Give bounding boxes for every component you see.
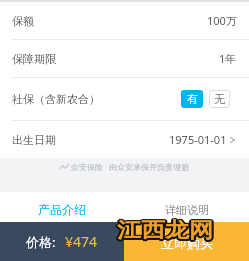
- staticText: 江西龙网: [116, 218, 212, 243]
- staticText: 100万: [207, 13, 237, 28]
- staticText: 详细说明: [165, 203, 209, 217]
- staticText: 江西龙网: [119, 218, 215, 244]
- staticText: 江西龙网: [117, 216, 213, 242]
- staticText: 1年: [219, 51, 237, 66]
- staticText: 江西龙网: [116, 216, 212, 242]
- staticText: 江西龙网: [118, 218, 214, 244]
- staticText: 社保（含新农合）: [12, 92, 100, 106]
- staticText: 江西龙网: [115, 218, 211, 243]
- staticText: 江西龙网: [118, 217, 214, 242]
- staticText: 江西龙网: [115, 217, 211, 242]
- button[interactable]: 无: [209, 90, 230, 108]
- staticText: 江西龙网: [119, 218, 215, 243]
- staticText: 江西龙网: [115, 218, 211, 244]
- staticText: 保障期限: [12, 52, 56, 66]
- button[interactable]: 有: [181, 90, 203, 108]
- staticText: 江西龙网: [117, 219, 213, 245]
- staticText: 江西龙网: [116, 218, 212, 244]
- staticText: 众安保险 由众安承保并负责理赔: [71, 161, 190, 172]
- staticText: 价格:: [26, 233, 56, 251]
- staticText: 江西龙网: [117, 218, 213, 244]
- staticText: 出生日期: [12, 133, 56, 147]
- button[interactable]: 立即购买: [124, 222, 249, 261]
- staticText: 江西龙网: [118, 218, 214, 243]
- staticText: 保额: [12, 14, 34, 28]
- staticText: 立即购买: [161, 235, 213, 251]
- button[interactable]: 产品介绍: [0, 192, 124, 222]
- staticText: 无: [214, 92, 225, 106]
- staticText: 江西龙网: [117, 217, 213, 242]
- staticText: 江西龙网: [118, 216, 214, 242]
- button[interactable]: 详细说明: [124, 192, 249, 222]
- staticText: 江西龙网: [118, 219, 214, 245]
- staticText: 江西龙网: [116, 219, 212, 245]
- button[interactable]: 出生日期: [0, 121, 249, 158]
- staticText: 产品介绍: [38, 202, 86, 217]
- staticText: 江西龙网: [117, 218, 213, 243]
- staticText: 1975-01-01: [169, 132, 227, 147]
- staticText: 有: [187, 92, 198, 106]
- staticText: 江西龙网: [119, 217, 215, 242]
- staticText: ¥474: [65, 232, 98, 251]
- staticText: 江西龙网: [116, 217, 212, 242]
